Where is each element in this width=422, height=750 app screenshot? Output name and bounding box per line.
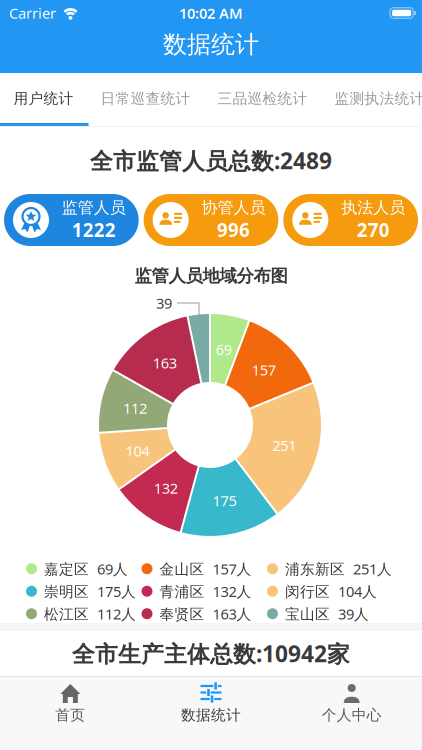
staticText: 69: [216, 339, 232, 359]
button[interactable]: 监测执法统计: [334, 89, 422, 107]
staticText: 全市生产主体总数:10942家: [72, 638, 350, 668]
staticText: Carrier: [9, 3, 56, 23]
staticText: 闵行区 104人: [285, 581, 377, 601]
staticText: 用户统计: [13, 89, 73, 107]
staticText: 日常巡查统计: [100, 89, 190, 107]
staticText: 132: [154, 478, 178, 498]
staticText: 163: [153, 353, 177, 372]
staticText: 270: [357, 217, 390, 242]
staticText: 监测执法统计: [334, 89, 422, 107]
staticText: 奉贤区 163人: [159, 604, 251, 623]
staticText: 996: [217, 217, 250, 242]
staticText: 数据统计: [181, 706, 241, 724]
staticText: 执法人员: [341, 198, 405, 217]
staticText: 三品巡检统计: [217, 89, 307, 107]
staticText: 嘉定区 69人: [44, 559, 128, 578]
button[interactable]: 数据统计: [141, 676, 281, 750]
button[interactable]: 首页: [0, 676, 141, 750]
staticText: 175: [213, 491, 237, 510]
staticText: 157: [252, 360, 276, 379]
button[interactable]: 三品巡检统计: [217, 89, 307, 107]
staticText: 首页: [55, 706, 85, 724]
staticText: 251: [272, 435, 296, 455]
staticText: 数据统计: [163, 30, 259, 59]
staticText: 监管人员: [62, 198, 126, 217]
staticText: 个人中心: [322, 706, 382, 724]
staticText: 宝山区 39人: [285, 604, 369, 623]
staticText: 松江区 112人: [44, 604, 136, 623]
staticText: 39: [156, 293, 172, 313]
staticText: 青浦区 132人: [159, 581, 251, 601]
staticText: 104: [125, 441, 149, 461]
button[interactable]: 用户统计: [13, 89, 73, 107]
staticText: 金山区 157人: [159, 559, 251, 578]
staticText: 1222: [72, 217, 116, 242]
staticText: 10:02 AM: [179, 3, 243, 23]
staticText: 协管人员: [201, 198, 265, 217]
staticText: 全市监管人员总数:2489: [90, 145, 332, 175]
staticText: 监管人员地域分布图: [134, 265, 287, 287]
staticText: 浦东新区 251人: [285, 559, 392, 578]
button[interactable]: 个人中心: [281, 676, 422, 750]
button[interactable]: 日常巡查统计: [100, 89, 190, 107]
staticText: 112: [123, 398, 147, 418]
staticText: 崇明区 175人: [44, 581, 136, 601]
